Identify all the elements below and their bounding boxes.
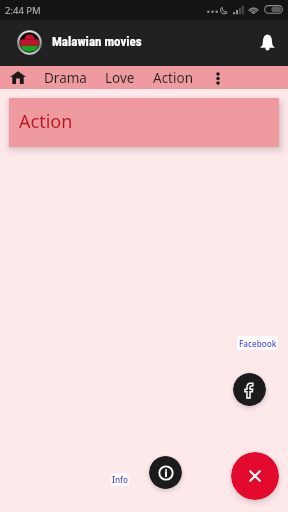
staticText: Facebook — [239, 338, 277, 349]
staticText: 2:44 PM — [5, 4, 41, 17]
button[interactable]: Facebook — [233, 373, 266, 406]
button[interactable]: Action — [9, 98, 279, 147]
staticText: Action — [153, 69, 193, 86]
button[interactable]: Close menu — [231, 452, 279, 500]
button[interactable]: Info — [149, 456, 182, 489]
button[interactable]: Notifications — [253, 28, 281, 56]
button[interactable]: Facebook — [237, 336, 278, 350]
staticText: Love — [105, 69, 135, 86]
staticText: Action — [19, 109, 73, 134]
button[interactable]: Home — [6, 66, 30, 89]
staticText: Drama — [44, 69, 87, 86]
button[interactable]: Action — [144, 66, 202, 89]
button[interactable]: More options — [207, 67, 229, 89]
staticText: Info — [112, 474, 128, 485]
staticText: Malawian movies — [52, 34, 142, 49]
button[interactable]: Love — [96, 66, 144, 89]
button[interactable]: Info — [111, 473, 129, 486]
button[interactable]: Drama — [35, 66, 96, 89]
